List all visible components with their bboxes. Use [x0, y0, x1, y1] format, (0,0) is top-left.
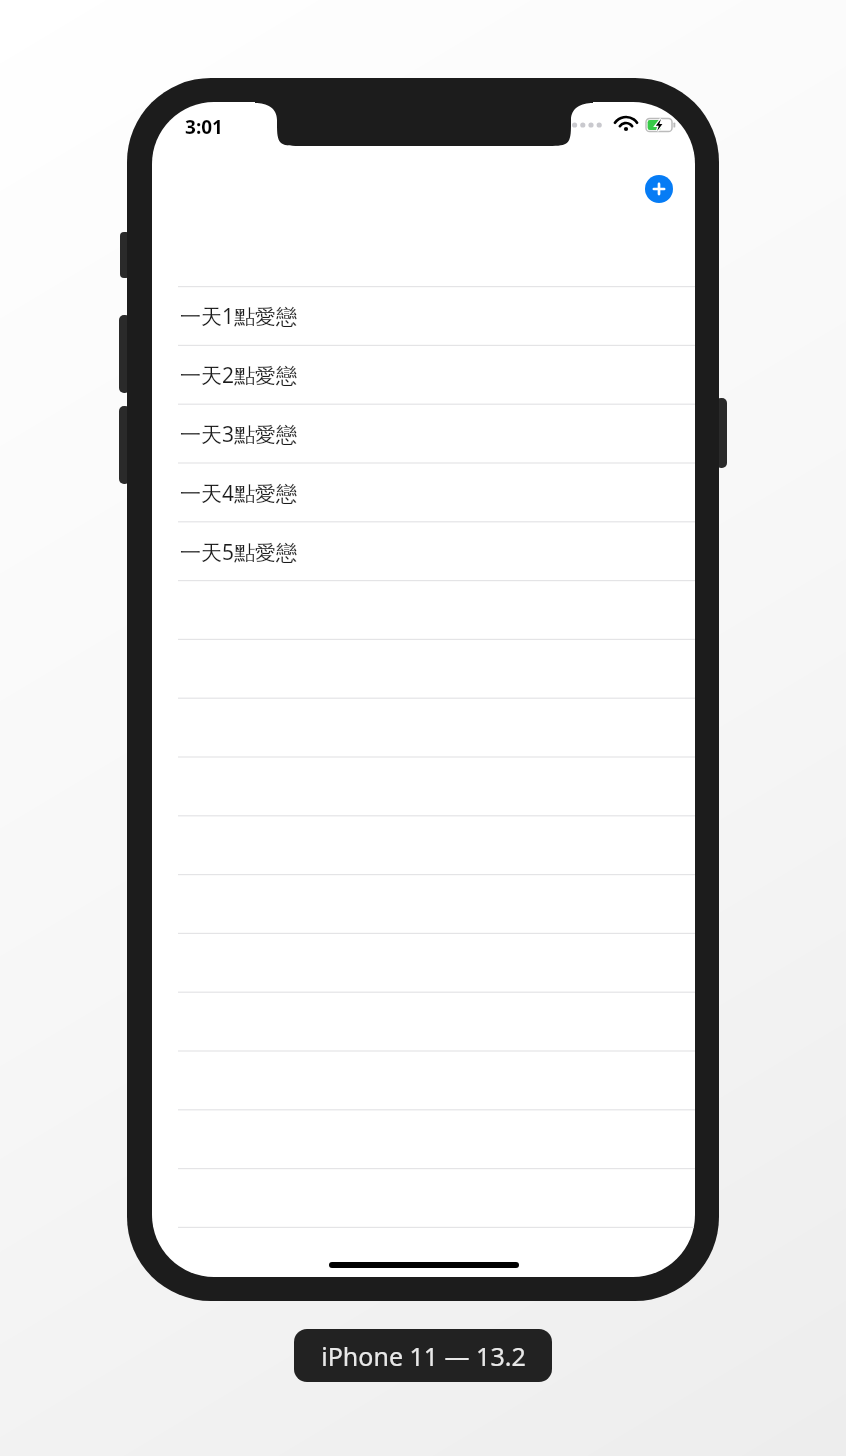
staticText: iPhone 11 — 13.2 — [321, 1339, 526, 1373]
staticText: 3:01 — [185, 114, 223, 140]
button[interactable] — [152, 1171, 695, 1230]
button[interactable]: Add — [645, 175, 673, 203]
button[interactable]: 一天4點愛戀 — [152, 463, 695, 522]
staticText: 一天1點愛戀 — [180, 302, 298, 331]
button[interactable] — [152, 1053, 695, 1112]
button[interactable] — [152, 876, 695, 935]
staticText: 一天4點愛戀 — [180, 479, 298, 508]
button[interactable] — [152, 1112, 695, 1171]
staticText: 一天3點愛戀 — [180, 420, 298, 449]
button[interactable] — [152, 581, 695, 640]
button[interactable] — [152, 935, 695, 994]
button[interactable] — [152, 817, 695, 876]
staticText: 一天5點愛戀 — [180, 538, 298, 567]
button[interactable]: 一天3點愛戀 — [152, 404, 695, 463]
button[interactable]: 一天2點愛戀 — [152, 345, 695, 404]
staticText: 一天2點愛戀 — [180, 361, 298, 390]
button[interactable] — [152, 640, 695, 699]
button[interactable] — [152, 758, 695, 817]
button[interactable]: 一天5點愛戀 — [152, 522, 695, 581]
button[interactable]: 一天1點愛戀 — [152, 286, 695, 345]
